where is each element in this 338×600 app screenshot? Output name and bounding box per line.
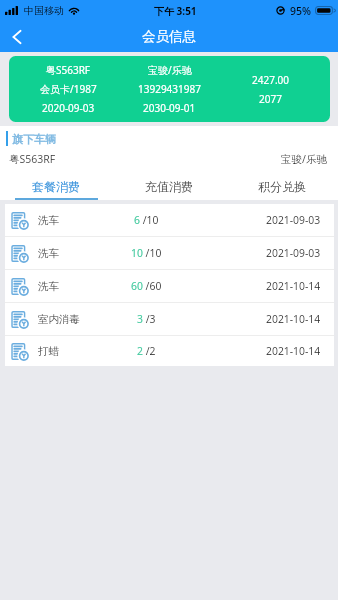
- staticText: 2021-09-03: [266, 213, 321, 227]
- button[interactable]: Back: [3, 23, 31, 51]
- staticText: 旗下车辆: [12, 132, 56, 146]
- staticText: 6 /10: [134, 213, 159, 227]
- button[interactable]: 洗车: [5, 204, 334, 236]
- staticText: 2077: [259, 92, 282, 106]
- staticText: 95%: [290, 4, 311, 18]
- button[interactable]: 洗车: [5, 237, 334, 269]
- staticText: 打蜡: [38, 345, 59, 358]
- staticText: 粤S563RF: [46, 63, 91, 77]
- staticText: 洗车: [38, 247, 59, 260]
- staticText: 宝骏/乐驰: [148, 63, 192, 77]
- staticText: 2021-10-14: [266, 344, 321, 358]
- staticText: 2030-09-01: [143, 101, 196, 115]
- staticText: 宝骏/乐驰: [281, 152, 327, 166]
- staticText: 2020-09-03: [42, 101, 95, 115]
- staticText: 2021-10-14: [266, 312, 321, 326]
- staticText: 积分兑换: [258, 179, 306, 194]
- staticText: 2021-10-14: [266, 279, 321, 293]
- staticText: 套餐消费: [32, 179, 80, 194]
- button[interactable]: 打蜡: [5, 336, 334, 366]
- staticText: 洗车: [38, 280, 59, 293]
- staticText: 13929431987: [138, 82, 201, 96]
- staticText: 充值消费: [145, 179, 193, 194]
- staticText: 60 /60: [131, 279, 162, 293]
- staticText: 中国移动: [24, 4, 64, 17]
- staticText: 2427.00: [252, 73, 289, 87]
- button[interactable]: 充值消费: [112, 175, 225, 200]
- staticText: 会员卡/1987: [40, 82, 97, 96]
- staticText: 10 /10: [131, 246, 162, 260]
- staticText: 粤S563RF: [9, 152, 56, 166]
- staticText: 洗车: [38, 214, 59, 227]
- button[interactable]: 室内消毒: [5, 303, 334, 335]
- button[interactable]: 积分兑换: [225, 175, 338, 200]
- button[interactable]: 洗车: [5, 270, 334, 302]
- staticText: 室内消毒: [38, 313, 80, 326]
- staticText: 3 /3: [137, 312, 156, 326]
- staticText: 下午 3:51: [154, 4, 197, 18]
- staticText: 2021-09-03: [266, 246, 321, 260]
- button[interactable]: 套餐消费: [0, 175, 112, 200]
- staticText: 2 /2: [137, 344, 156, 358]
- staticText: 会员信息: [142, 28, 196, 45]
